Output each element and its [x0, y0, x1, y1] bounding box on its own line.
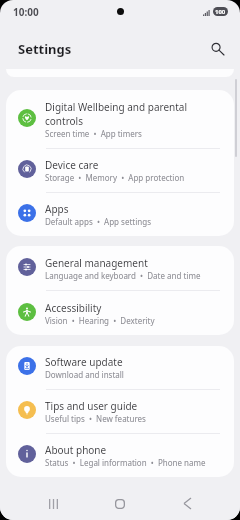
button[interactable]: Device care	[6, 149, 234, 192]
staticText: 10:00	[13, 5, 39, 19]
staticText: General management	[45, 256, 148, 270]
staticText: Screen time • App timers	[45, 128, 142, 139]
button[interactable]: Accessibility	[6, 291, 234, 335]
staticText: Software update	[45, 355, 123, 369]
staticText: Vision • Hearing • Dexterity	[45, 315, 155, 326]
button[interactable]: About phone	[6, 434, 234, 477]
staticText: Storage • Memory • App protection	[45, 172, 185, 183]
staticText: Default apps • App settings	[45, 216, 151, 227]
staticText: Useful tips • New features	[45, 413, 146, 424]
button[interactable]: Back	[166, 487, 208, 520]
staticText: 100	[215, 8, 226, 16]
button[interactable]: Tips and user guide	[6, 390, 234, 433]
staticText: controls	[45, 114, 83, 128]
staticText: Device care	[45, 158, 99, 172]
button[interactable]: General management	[6, 246, 234, 290]
staticText: Apps	[45, 202, 69, 216]
staticText: Accessibility	[45, 301, 102, 315]
staticText: Settings	[18, 40, 72, 58]
staticText: Status • Legal information • Phone name	[45, 457, 206, 468]
staticText: Download and install	[45, 369, 124, 380]
button[interactable]: Software update	[6, 346, 234, 389]
button[interactable]: Home	[99, 487, 141, 520]
staticText: Tips and user guide	[45, 399, 138, 413]
button[interactable]: Recent apps	[32, 487, 74, 520]
staticText: Language and keyboard • Date and time	[45, 270, 201, 281]
button[interactable]: Digital Wellbeing and parental	[6, 90, 234, 148]
button[interactable]: Apps	[6, 193, 234, 236]
button[interactable]: Search	[203, 34, 233, 64]
staticText: Digital Wellbeing and parental	[45, 100, 188, 114]
staticText: About phone	[45, 443, 107, 457]
